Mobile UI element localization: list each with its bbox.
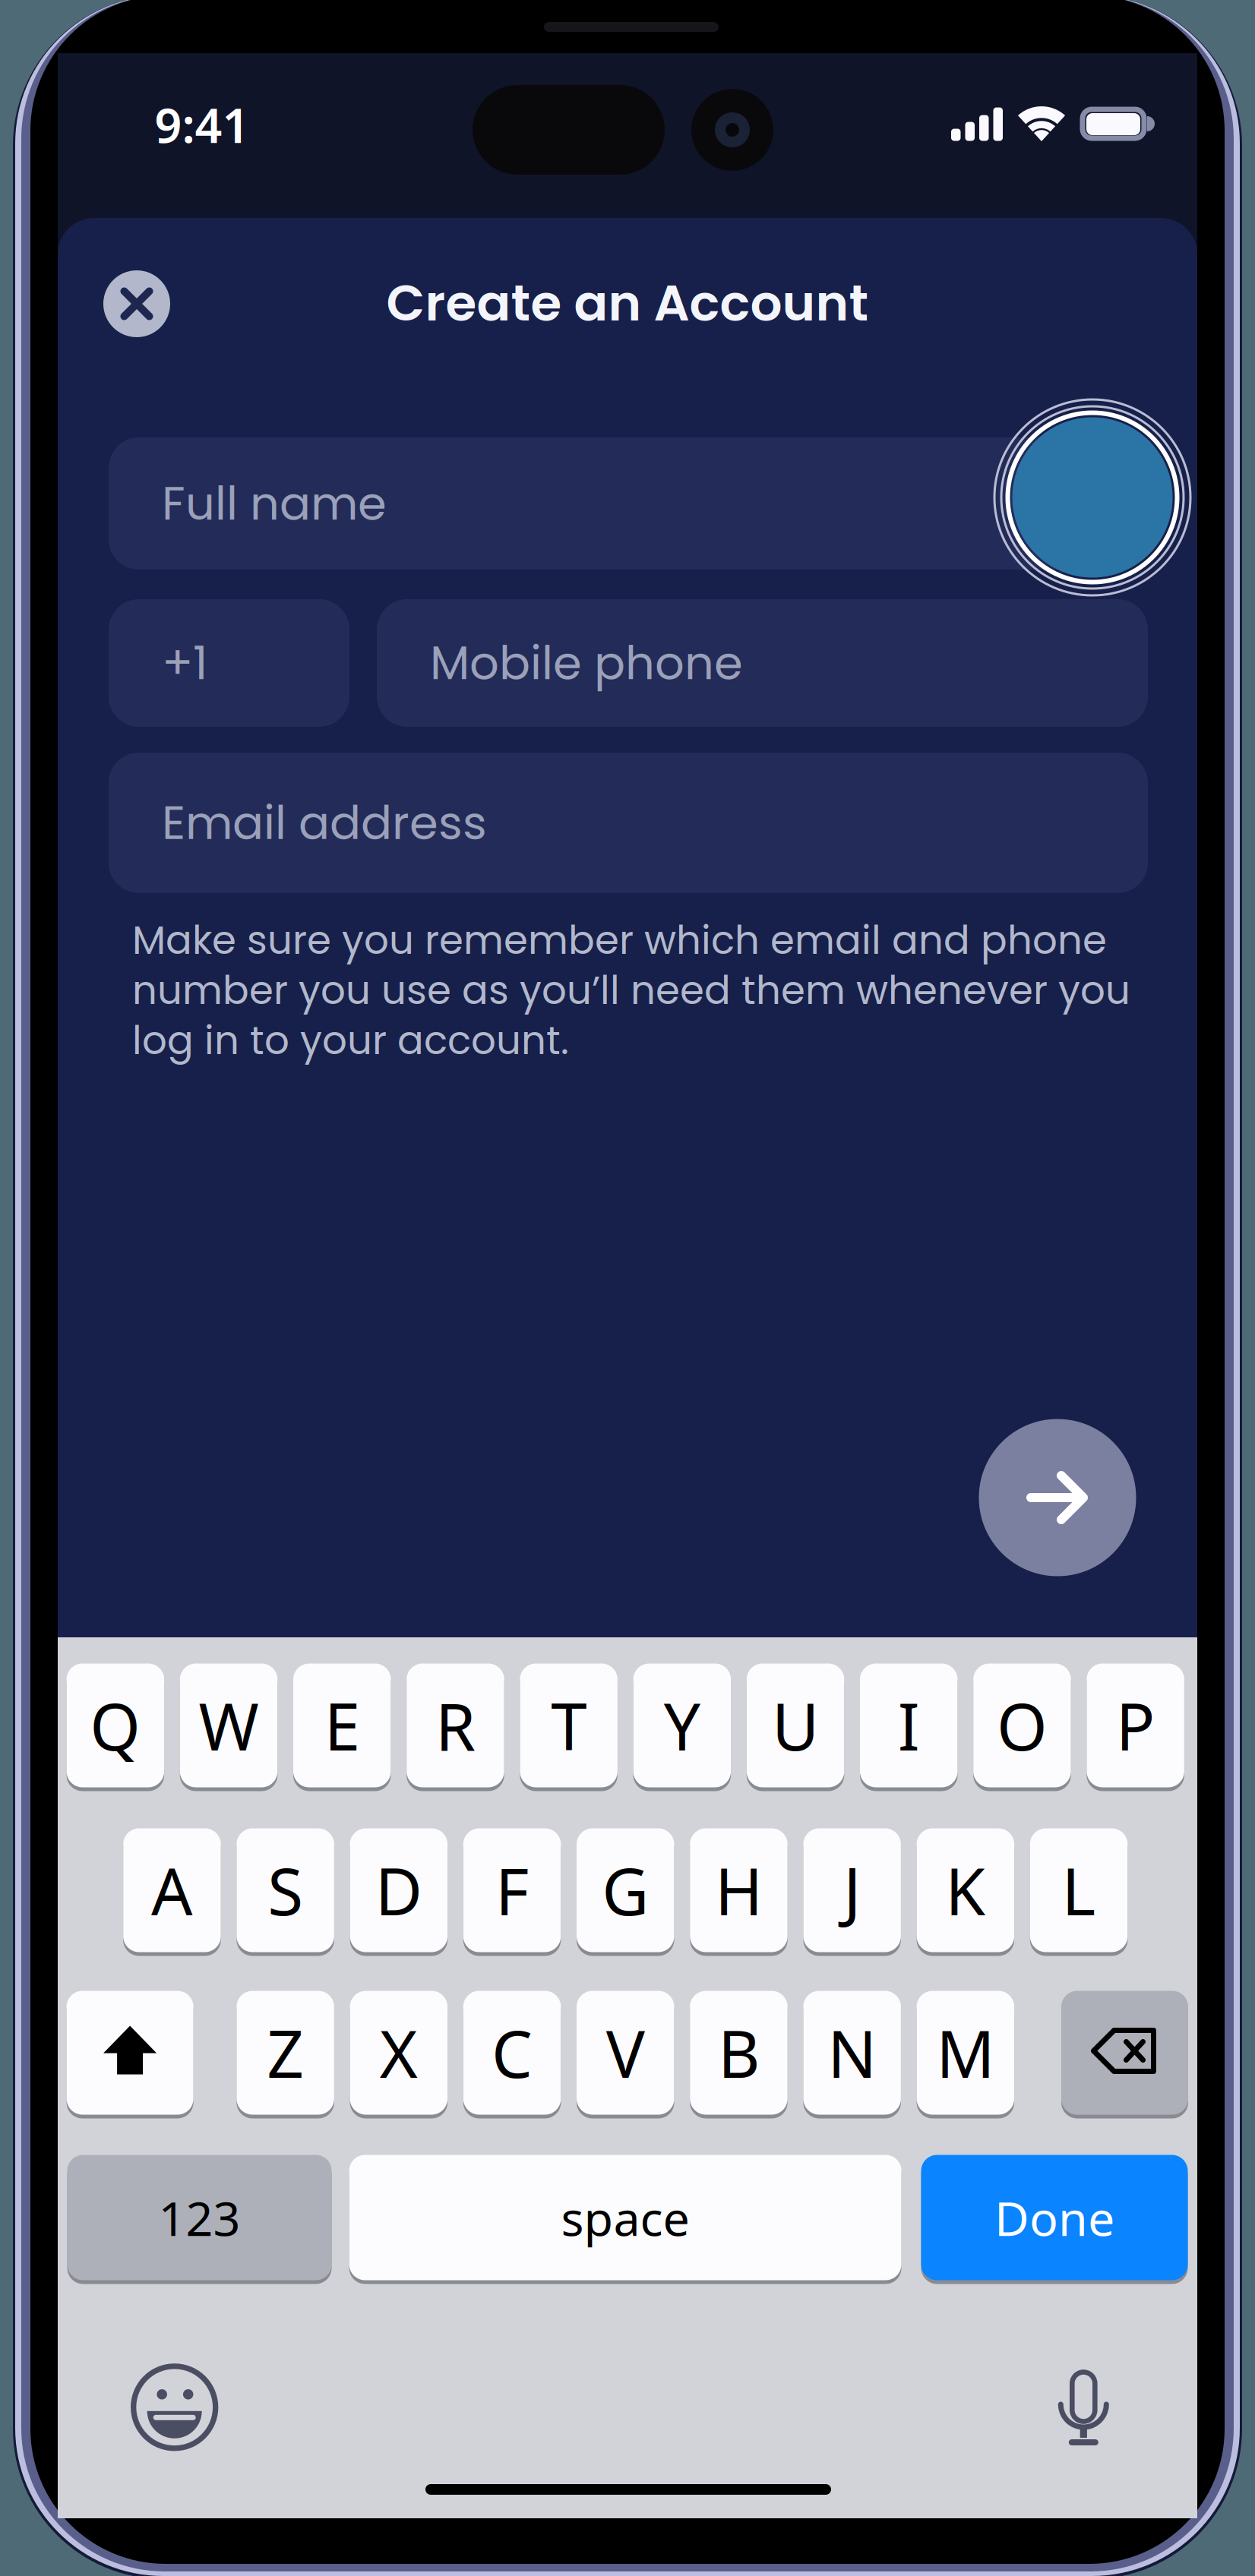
button[interactable]: X [350, 1987, 448, 2118]
staticText: F [495, 1847, 529, 1933]
staticText: Done [994, 2186, 1114, 2249]
staticText: A [151, 1847, 193, 1933]
button[interactable]: Y [633, 1660, 731, 1791]
staticText: +1 [162, 631, 207, 695]
button[interactable]: 123 [67, 2151, 332, 2284]
staticText: B [718, 2010, 760, 2096]
staticText: 9:41 [155, 93, 250, 156]
staticText: space [561, 2186, 689, 2249]
staticText: H [715, 1847, 763, 1933]
staticText: W [199, 1682, 259, 1768]
button[interactable]: H [690, 1825, 788, 1956]
button[interactable]: +1 [109, 599, 349, 727]
staticText: Email address [162, 791, 487, 855]
button[interactable]: U [747, 1660, 844, 1791]
button[interactable]: Continue [0, 0, 157, 157]
button[interactable]: B [690, 1987, 788, 2118]
staticText: R [435, 1682, 475, 1768]
staticText: T [551, 1682, 587, 1768]
button[interactable]: I [860, 1660, 958, 1791]
staticText: O [997, 1682, 1048, 1768]
button[interactable]: Q [67, 1660, 164, 1791]
button[interactable]: V [577, 1987, 674, 2118]
staticText: Z [267, 2010, 304, 2096]
staticText: S [267, 1847, 303, 1933]
button[interactable]: Z [237, 1987, 334, 2118]
staticText: L [1062, 1847, 1096, 1933]
staticText: G [602, 1847, 649, 1933]
staticText: P [1116, 1682, 1155, 1768]
button[interactable]: Delete [0, 0, 127, 131]
button[interactable]: Full name [109, 437, 1148, 570]
staticText: U [772, 1682, 819, 1768]
button[interactable]: M [917, 1987, 1014, 2118]
button[interactable]: T [520, 1660, 618, 1791]
staticText: V [606, 2010, 645, 2096]
button[interactable]: K [917, 1825, 1014, 1956]
button[interactable]: Shift [0, 0, 127, 131]
staticText: X [380, 2010, 418, 2096]
button[interactable]: Email address [109, 753, 1148, 893]
button[interactable]: R [407, 1660, 504, 1791]
staticText: log in to your account. [132, 1013, 569, 1068]
button[interactable]: Done [921, 2151, 1188, 2284]
button[interactable]: A [123, 1825, 221, 1956]
staticText: Make sure you remember which email and p… [132, 913, 1107, 968]
button[interactable]: Close [0, 0, 67, 67]
button[interactable]: G [577, 1825, 674, 1956]
staticText: E [324, 1682, 360, 1768]
button[interactable]: Emoji keyboard [0, 0, 84, 84]
button[interactable]: E [293, 1660, 391, 1791]
staticText: I [898, 1682, 920, 1768]
staticText: Y [664, 1682, 700, 1768]
button[interactable]: D [350, 1825, 448, 1956]
staticText: J [843, 1847, 861, 1933]
staticText: M [936, 2010, 995, 2096]
staticText: number you use as you’ll need them whene… [132, 963, 1130, 1018]
staticText: Q [90, 1682, 141, 1768]
button[interactable]: C [463, 1987, 561, 2118]
staticText: K [945, 1847, 986, 1933]
staticText: Mobile phone [430, 631, 743, 695]
button[interactable]: Dictate [0, 0, 84, 84]
button[interactable]: S [237, 1825, 334, 1956]
button[interactable]: O [973, 1660, 1071, 1791]
staticText: Create an Account [386, 268, 869, 338]
button[interactable]: F [463, 1825, 561, 1956]
staticText: Full name [162, 471, 387, 536]
button[interactable]: N [803, 1987, 901, 2118]
button[interactable]: P [1087, 1660, 1184, 1791]
button[interactable]: space [349, 2151, 901, 2284]
staticText: C [492, 2010, 533, 2096]
button[interactable]: Mobile phone [377, 599, 1148, 727]
button[interactable]: W [180, 1660, 278, 1791]
staticText: D [375, 1847, 422, 1933]
button[interactable]: J [803, 1825, 901, 1956]
staticText: 123 [158, 2186, 240, 2249]
staticText: N [827, 2010, 877, 2096]
button[interactable]: L [1030, 1825, 1128, 1956]
